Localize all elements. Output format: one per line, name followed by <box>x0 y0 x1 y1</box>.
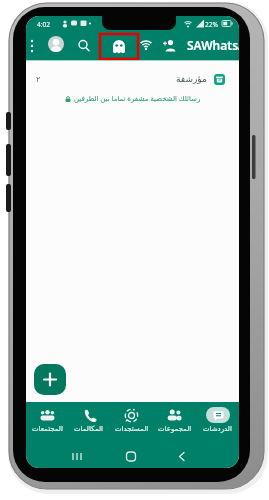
button[interactable] <box>100 34 138 59</box>
button[interactable] <box>76 38 92 54</box>
button[interactable]: ٢ <box>26 63 239 95</box>
staticText: المجموعات <box>158 425 192 433</box>
staticText: 22% <box>205 20 218 29</box>
staticText: رسائلك الشخصية مشفرة تماما بين الطرفين <box>74 94 201 104</box>
button[interactable] <box>162 38 178 54</box>
button[interactable]: الدردشات <box>196 402 239 445</box>
staticText: SAWhatsAp <box>187 37 239 53</box>
button[interactable]: المستجدات <box>110 402 153 445</box>
button[interactable] <box>48 36 64 52</box>
staticText: المستجدات <box>115 425 149 433</box>
button[interactable]: المكالمات <box>68 402 110 445</box>
button[interactable]: المجموعات <box>153 402 196 445</box>
staticText: الدردشات <box>203 425 232 433</box>
staticText: مؤرشفة <box>176 74 207 84</box>
button[interactable]: المجتمعات <box>26 402 68 445</box>
button[interactable] <box>26 32 38 60</box>
staticText: ٢ <box>36 75 41 84</box>
staticText: المجتمعات <box>32 425 63 433</box>
button[interactable] <box>34 364 66 395</box>
button[interactable] <box>138 37 154 53</box>
staticText: 4:02 <box>37 20 50 29</box>
staticText: المكالمات <box>74 425 104 433</box>
